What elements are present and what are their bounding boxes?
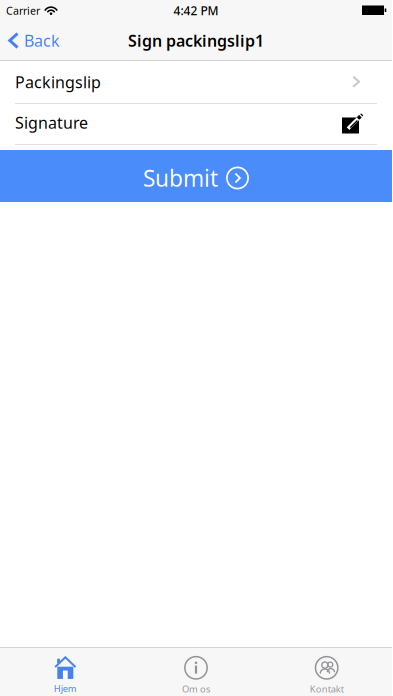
staticText: Back — [24, 30, 60, 51]
staticText: Om os — [182, 683, 210, 695]
button[interactable]: Signature — [0, 104, 392, 144]
staticText: Packingslip — [15, 71, 101, 93]
button[interactable]: Om os — [131, 648, 261, 696]
staticText: Sign packingslip1 — [128, 30, 264, 51]
staticText: Carrier — [6, 3, 40, 18]
staticText: Hjem — [54, 682, 77, 695]
staticText: Submit — [143, 163, 218, 193]
button[interactable]: Packingslip — [0, 61, 392, 103]
button[interactable]: Submit — [0, 150, 392, 202]
button[interactable]: Hjem — [0, 648, 131, 696]
staticText: 4:42 PM — [173, 2, 218, 18]
button[interactable]: Kontakt — [261, 648, 392, 696]
staticText: Signature — [15, 112, 88, 133]
button[interactable]: Back — [0, 30, 60, 51]
staticText: Kontakt — [310, 683, 344, 695]
